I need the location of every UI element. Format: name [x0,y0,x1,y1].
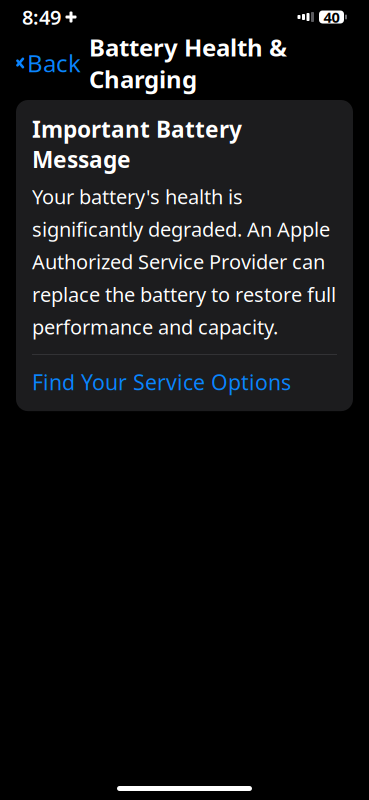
staticText: Battery Health & Charging [89,31,287,95]
staticText: 8:49 [22,4,61,30]
button[interactable]: Find Your Service Options [32,355,337,411]
staticText: Your battery's health is significantly d… [32,183,336,340]
button[interactable]: Back [0,41,81,85]
staticText: Back [27,47,81,79]
staticText: 40 [323,7,339,27]
staticText: Find Your Service Options [32,368,291,396]
staticText: Important Battery Message [32,114,242,174]
staticText: Your battery is currently supporting nor… [26,727,241,800]
